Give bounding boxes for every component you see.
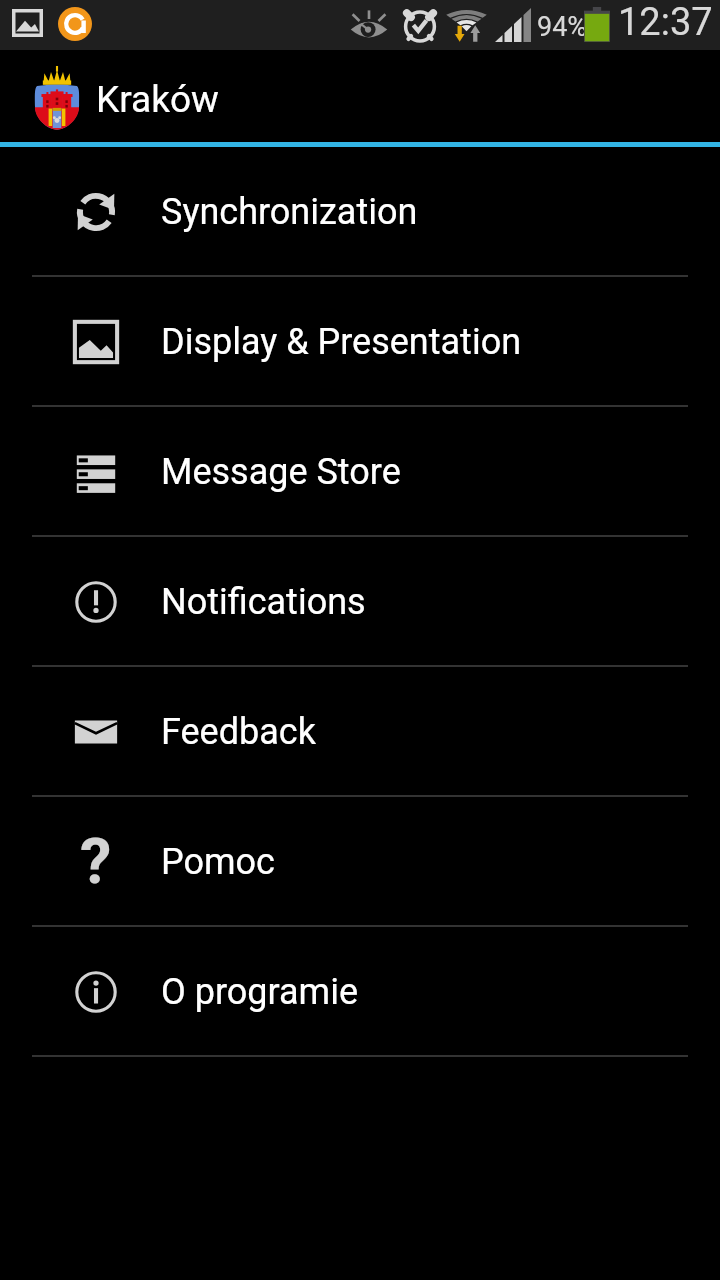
- staticText: Synchronization: [161, 191, 418, 233]
- staticText: Message Store: [161, 451, 401, 493]
- button[interactable]: ?: [0, 797, 720, 927]
- button[interactable]: Display & Presentation: [0, 277, 720, 407]
- button[interactable]: Feedback: [0, 667, 720, 797]
- staticText: Display & Presentation: [161, 321, 522, 363]
- staticText: Notifications: [161, 581, 366, 623]
- staticText: ?: [80, 825, 112, 899]
- staticText: O programie: [161, 971, 358, 1013]
- button[interactable]: Message Store: [0, 407, 720, 537]
- button[interactable]: Notifications: [0, 537, 720, 667]
- button[interactable]: Synchronization: [0, 147, 720, 277]
- staticText: 94%: [537, 11, 588, 43]
- staticText: Feedback: [161, 711, 316, 753]
- staticText: 12:37: [618, 0, 713, 45]
- button[interactable]: O programie: [0, 927, 720, 1057]
- other: Kraków app icon: [33, 64, 81, 130]
- button[interactable]: Kraków app icon: [0, 50, 250, 142]
- staticText: Pomoc: [161, 841, 275, 883]
- staticText: Kraków: [96, 78, 219, 121]
